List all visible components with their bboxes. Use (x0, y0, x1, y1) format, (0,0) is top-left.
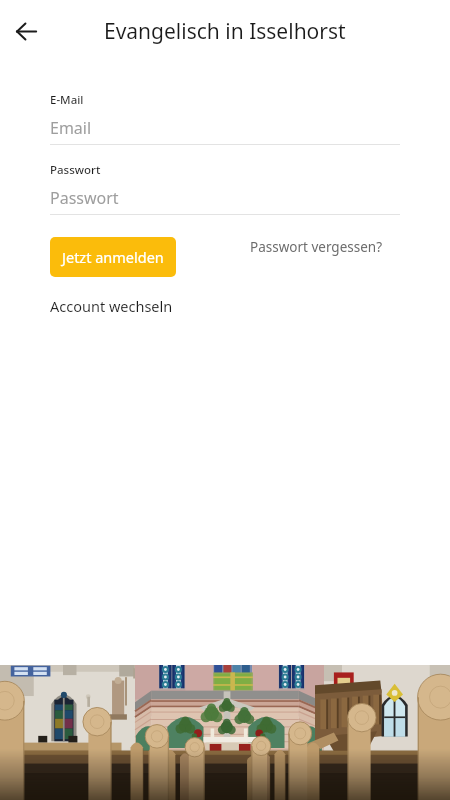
staticText: Passwort vergessen? (250, 238, 382, 256)
button[interactable]: Jetzt anmelden (50, 237, 176, 277)
staticText: Passwort (50, 187, 119, 209)
button[interactable]: Back (2, 7, 50, 55)
button[interactable]: Passwort vergessen? (250, 238, 382, 256)
staticText: Account wechseln (50, 296, 173, 316)
staticText: Jetzt anmelden (62, 247, 164, 267)
staticText: Passwort (50, 162, 101, 178)
staticText: E-Mail (50, 92, 84, 108)
staticText: Email (50, 117, 92, 139)
staticText: Evangelisch in Isselhorst (104, 17, 346, 46)
button[interactable]: Account wechseln (50, 296, 173, 316)
